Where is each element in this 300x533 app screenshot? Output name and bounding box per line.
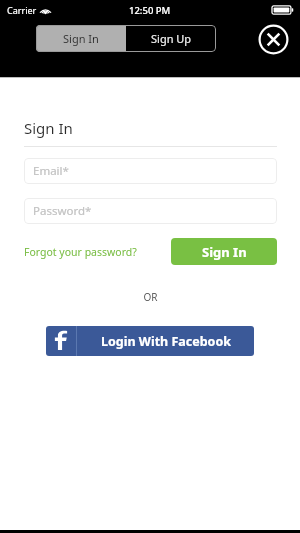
staticText: Forgot your password?: [24, 245, 137, 259]
staticText: Email*: [33, 163, 69, 179]
staticText: Sign In: [63, 31, 99, 46]
button[interactable]: Sign In: [171, 238, 277, 265]
staticText: OR: [143, 290, 158, 304]
button[interactable]: Close: [258, 24, 289, 55]
button[interactable]: Forgot your password?: [24, 245, 137, 259]
button[interactable]: Sign Up: [126, 25, 216, 52]
staticText: Sign Up: [151, 31, 192, 46]
staticText: Password*: [33, 203, 92, 219]
staticText: Sign In: [202, 243, 247, 261]
staticText: 12:50 PM: [129, 4, 171, 17]
button[interactable]: Password*: [24, 198, 277, 224]
button[interactable]: Login With Facebook: [46, 326, 254, 356]
staticText: Login With Facebook: [101, 333, 231, 350]
button[interactable]: Email*: [24, 158, 277, 184]
button[interactable]: Sign In: [36, 25, 126, 52]
staticText: Carrier: [7, 4, 37, 16]
staticText: Sign In: [24, 118, 73, 138]
